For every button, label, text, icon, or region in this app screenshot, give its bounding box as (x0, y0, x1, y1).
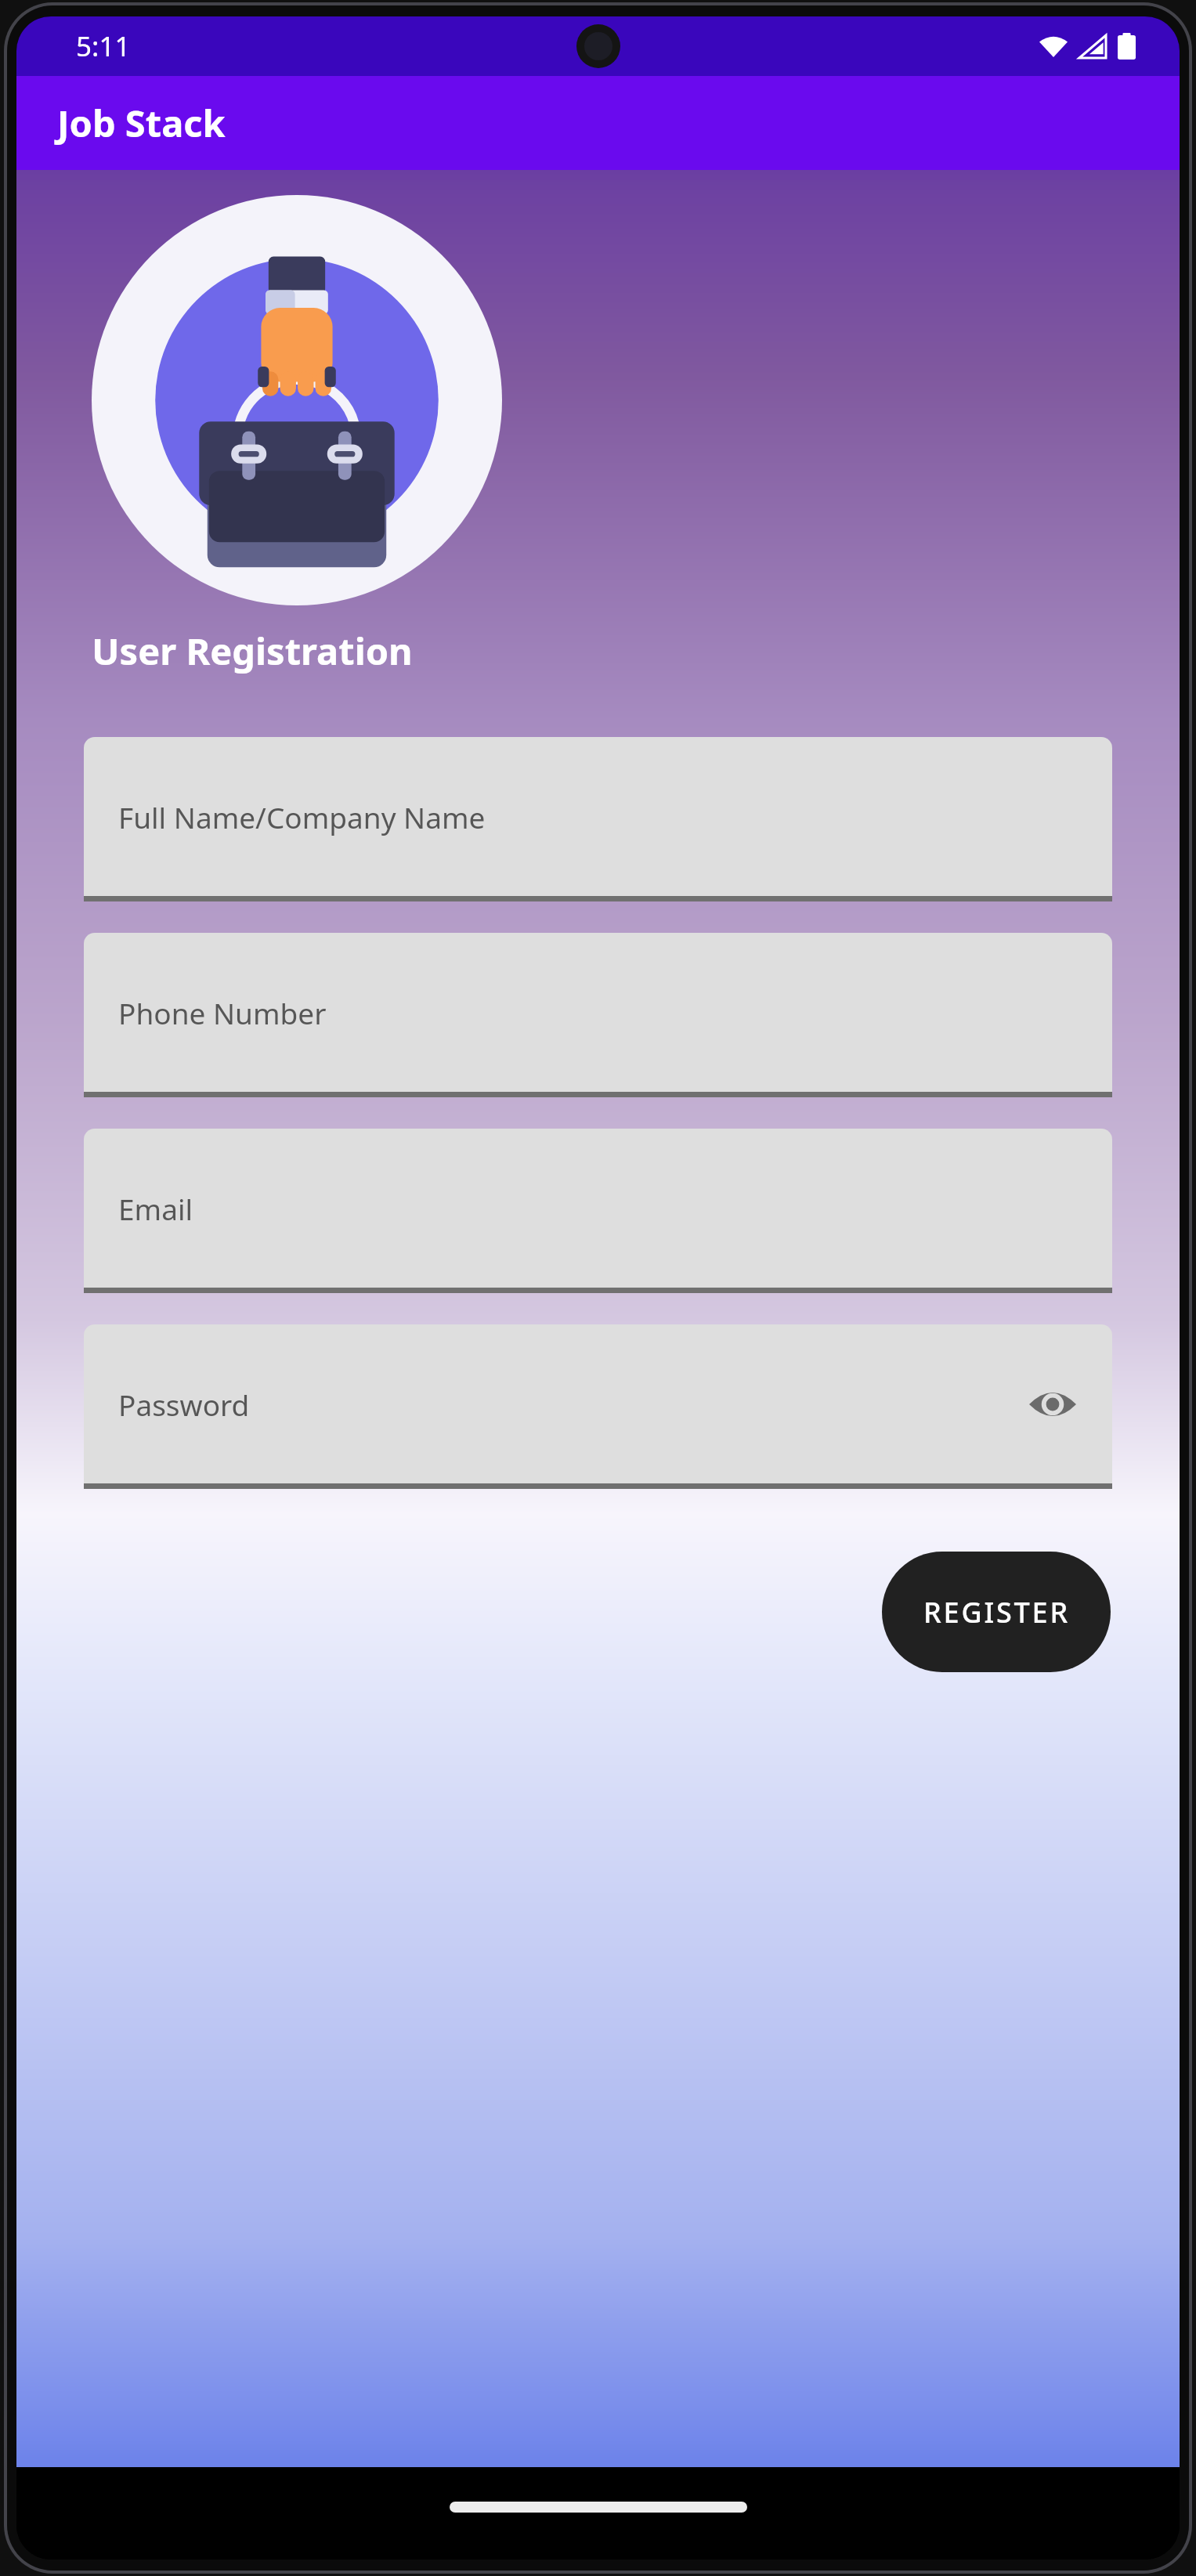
staticText: Phone Number (118, 993, 327, 1032)
button[interactable]: REGISTER (882, 1552, 1111, 1672)
button[interactable]: Full Name/Company Name (84, 737, 1112, 901)
staticText: Job Stack (57, 98, 226, 148)
staticText: Password (118, 1385, 250, 1424)
button[interactable]: Password (84, 1324, 1112, 1489)
staticText: User Registration (92, 626, 413, 676)
staticText: 5:11 (76, 27, 131, 65)
button[interactable]: Phone Number (84, 933, 1112, 1097)
button[interactable]: Email (84, 1129, 1112, 1293)
button[interactable]: Show password (1021, 1373, 1084, 1436)
staticText: REGISTER (923, 1593, 1070, 1631)
staticText: Full Name/Company Name (118, 797, 486, 836)
staticText: Email (118, 1189, 193, 1228)
